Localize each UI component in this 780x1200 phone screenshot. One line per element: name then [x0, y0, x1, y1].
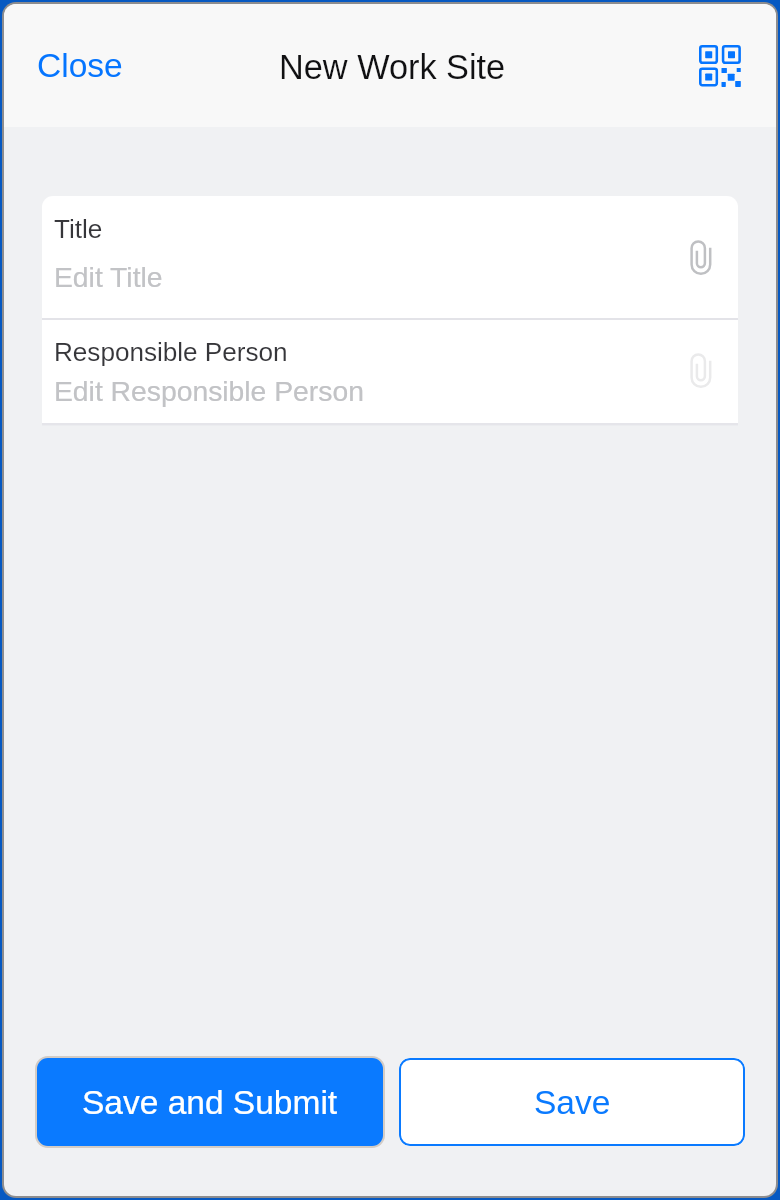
button[interactable]: Title [42, 196, 738, 318]
button[interactable]: Close [25, 37, 135, 94]
staticText: Save [534, 1084, 611, 1121]
staticText: Edit Title [54, 261, 163, 293]
staticText: New Work Site [279, 48, 506, 86]
button[interactable]: Scan QR code [692, 38, 748, 94]
button[interactable]: Save and Submit [35, 1056, 385, 1148]
staticText: Close [37, 47, 123, 84]
staticText: Save and Submit [82, 1084, 338, 1121]
button[interactable]: Attach file [679, 235, 719, 279]
staticText: Edit Responsible Person [54, 375, 364, 407]
staticText: Title [54, 214, 103, 243]
button[interactable]: Responsible Person [42, 320, 738, 423]
staticText: Responsible Person [54, 337, 288, 366]
button[interactable]: Attach file [679, 348, 719, 392]
button[interactable]: Save [399, 1058, 745, 1146]
